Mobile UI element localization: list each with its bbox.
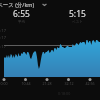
staticText: 0:00 bbox=[0, 81, 11, 86]
button[interactable]: 5:15 bbox=[55, 8, 100, 25]
button[interactable]: ペース (分/km) bbox=[0, 0, 100, 9]
staticText: 5:15 bbox=[69, 8, 86, 20]
staticText: 0:18:00 bbox=[58, 91, 71, 96]
other: Expand bbox=[41, 1, 48, 8]
staticText: 42:56 bbox=[83, 81, 97, 86]
staticText: 平均 bbox=[18, 20, 26, 25]
button[interactable]: 6:55 bbox=[0, 8, 43, 25]
staticText: ペース (分/km) bbox=[0, 1, 35, 9]
staticText: 6:17 bbox=[0, 44, 6, 49]
staticText: 21:28 bbox=[40, 81, 54, 86]
staticText: 10:44 bbox=[19, 81, 33, 86]
staticText: 4:17 bbox=[0, 28, 6, 33]
staticText: 32:12 bbox=[62, 81, 76, 86]
staticText: ベスト bbox=[72, 20, 84, 25]
staticText: 6:55 bbox=[13, 8, 30, 20]
staticText: 5:17 bbox=[0, 35, 6, 40]
